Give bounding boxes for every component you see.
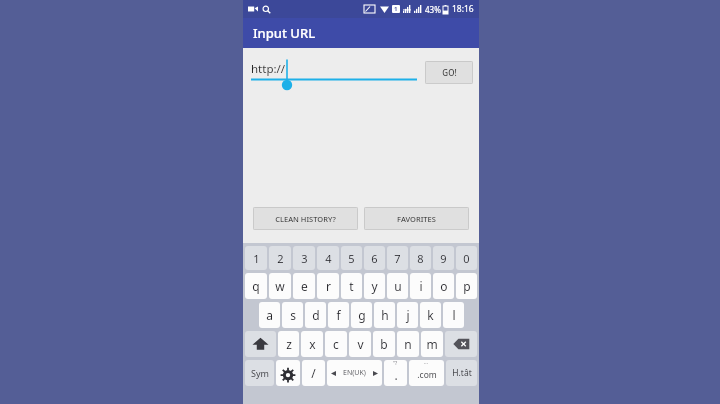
staticText: w: [275, 278, 285, 294]
staticText: http://: [251, 61, 286, 77]
staticText: x: [309, 336, 316, 352]
staticText: H.tât: [452, 367, 472, 379]
button[interactable]: FAVORITES: [364, 207, 469, 230]
staticText: p: [463, 278, 471, 294]
staticText: r: [326, 278, 331, 294]
staticText: .: [394, 367, 398, 383]
button[interactable]: Settings: [276, 360, 300, 386]
button[interactable]: q: [245, 273, 267, 299]
staticText: 0: [463, 251, 470, 266]
button[interactable]: /: [302, 360, 325, 386]
button[interactable]: Backspace: [445, 331, 477, 357]
button[interactable]: b: [373, 331, 395, 357]
staticText: o: [440, 278, 448, 294]
button[interactable]: 5: [341, 246, 362, 270]
staticText: f: [336, 307, 341, 323]
staticText: a: [266, 307, 273, 323]
staticText: .com: [417, 369, 437, 381]
staticText: c: [333, 336, 339, 352]
button[interactable]: u: [387, 273, 408, 299]
staticText: Input URL: [253, 24, 316, 42]
button[interactable]: g: [351, 302, 372, 328]
button[interactable]: z: [278, 331, 299, 357]
staticText: 8: [417, 251, 424, 266]
button[interactable]: http://: [251, 55, 417, 89]
staticText: i: [419, 278, 423, 294]
button[interactable]: 0: [456, 246, 477, 270]
staticText: b: [380, 336, 388, 352]
button[interactable]: 8: [410, 246, 431, 270]
staticText: 2: [277, 251, 284, 266]
staticText: 18:16: [452, 3, 474, 15]
button[interactable]: 2: [269, 246, 291, 270]
staticText: 9: [440, 251, 447, 266]
button[interactable]: h: [374, 302, 395, 328]
staticText: s: [290, 307, 296, 323]
button[interactable]: c: [325, 331, 347, 357]
staticText: u: [394, 278, 402, 294]
button[interactable]: p: [456, 273, 477, 299]
button[interactable]: l: [443, 302, 464, 328]
button[interactable]: CLEAN HISTORY?: [253, 207, 358, 230]
staticText: Sym: [251, 367, 269, 379]
staticText: 1: [253, 251, 260, 266]
staticText: /: [311, 365, 316, 381]
button[interactable]: f: [328, 302, 349, 328]
button[interactable]: x: [301, 331, 323, 357]
button[interactable]: d: [305, 302, 326, 328]
staticText: h: [381, 307, 389, 323]
staticText: t: [349, 278, 354, 294]
staticText: 3: [301, 251, 308, 266]
button[interactable]: Sym: [245, 360, 274, 386]
staticText: y: [371, 278, 378, 294]
button[interactable]: EN(UK): [327, 360, 382, 386]
staticText: CLEAN HISTORY?: [275, 214, 336, 224]
staticText: j: [406, 307, 410, 323]
staticText: FAVORITES: [397, 214, 436, 224]
button[interactable]: j: [397, 302, 418, 328]
staticText: EN(UK): [343, 368, 366, 378]
button[interactable]: t: [341, 273, 362, 299]
staticText: 4: [325, 251, 332, 266]
staticText: 7: [394, 251, 401, 266]
button[interactable]: ···: [409, 360, 444, 386]
button[interactable]: 4: [317, 246, 339, 270]
button[interactable]: 6: [364, 246, 385, 270]
button[interactable]: a: [259, 302, 280, 328]
button[interactable]: 3: [293, 246, 315, 270]
staticText: l: [452, 307, 456, 323]
staticText: 6: [371, 251, 378, 266]
staticText: g: [358, 307, 366, 323]
button[interactable]: w: [269, 273, 291, 299]
staticText: n: [404, 336, 412, 352]
staticText: d: [312, 307, 320, 323]
button[interactable]: o: [433, 273, 454, 299]
button[interactable]: s: [282, 302, 303, 328]
staticText: 43%: [425, 4, 441, 15]
button[interactable]: n: [397, 331, 419, 357]
button[interactable]: H.tât: [446, 360, 477, 386]
staticText: e: [301, 278, 308, 294]
button[interactable]: v: [349, 331, 371, 357]
staticText: v: [357, 336, 364, 352]
button[interactable]: e: [293, 273, 315, 299]
button[interactable]: 1: [245, 246, 267, 270]
button[interactable]: Shift: [245, 331, 276, 357]
button[interactable]: k: [420, 302, 441, 328]
staticText: m: [426, 336, 438, 352]
staticText: q: [252, 278, 260, 294]
button[interactable]: m: [421, 331, 443, 357]
staticText: ···: [424, 360, 429, 367]
staticText: 1: [394, 5, 398, 13]
button[interactable]: r: [317, 273, 339, 299]
button[interactable]: "?: [384, 360, 407, 386]
button[interactable]: GO!: [425, 61, 473, 84]
staticText: k: [427, 307, 434, 323]
button[interactable]: i: [410, 273, 431, 299]
button[interactable]: y: [364, 273, 385, 299]
button[interactable]: 7: [387, 246, 408, 270]
staticText: 5: [348, 251, 355, 266]
staticText: "?: [393, 360, 398, 367]
button[interactable]: 9: [433, 246, 454, 270]
staticText: GO!: [442, 67, 457, 78]
